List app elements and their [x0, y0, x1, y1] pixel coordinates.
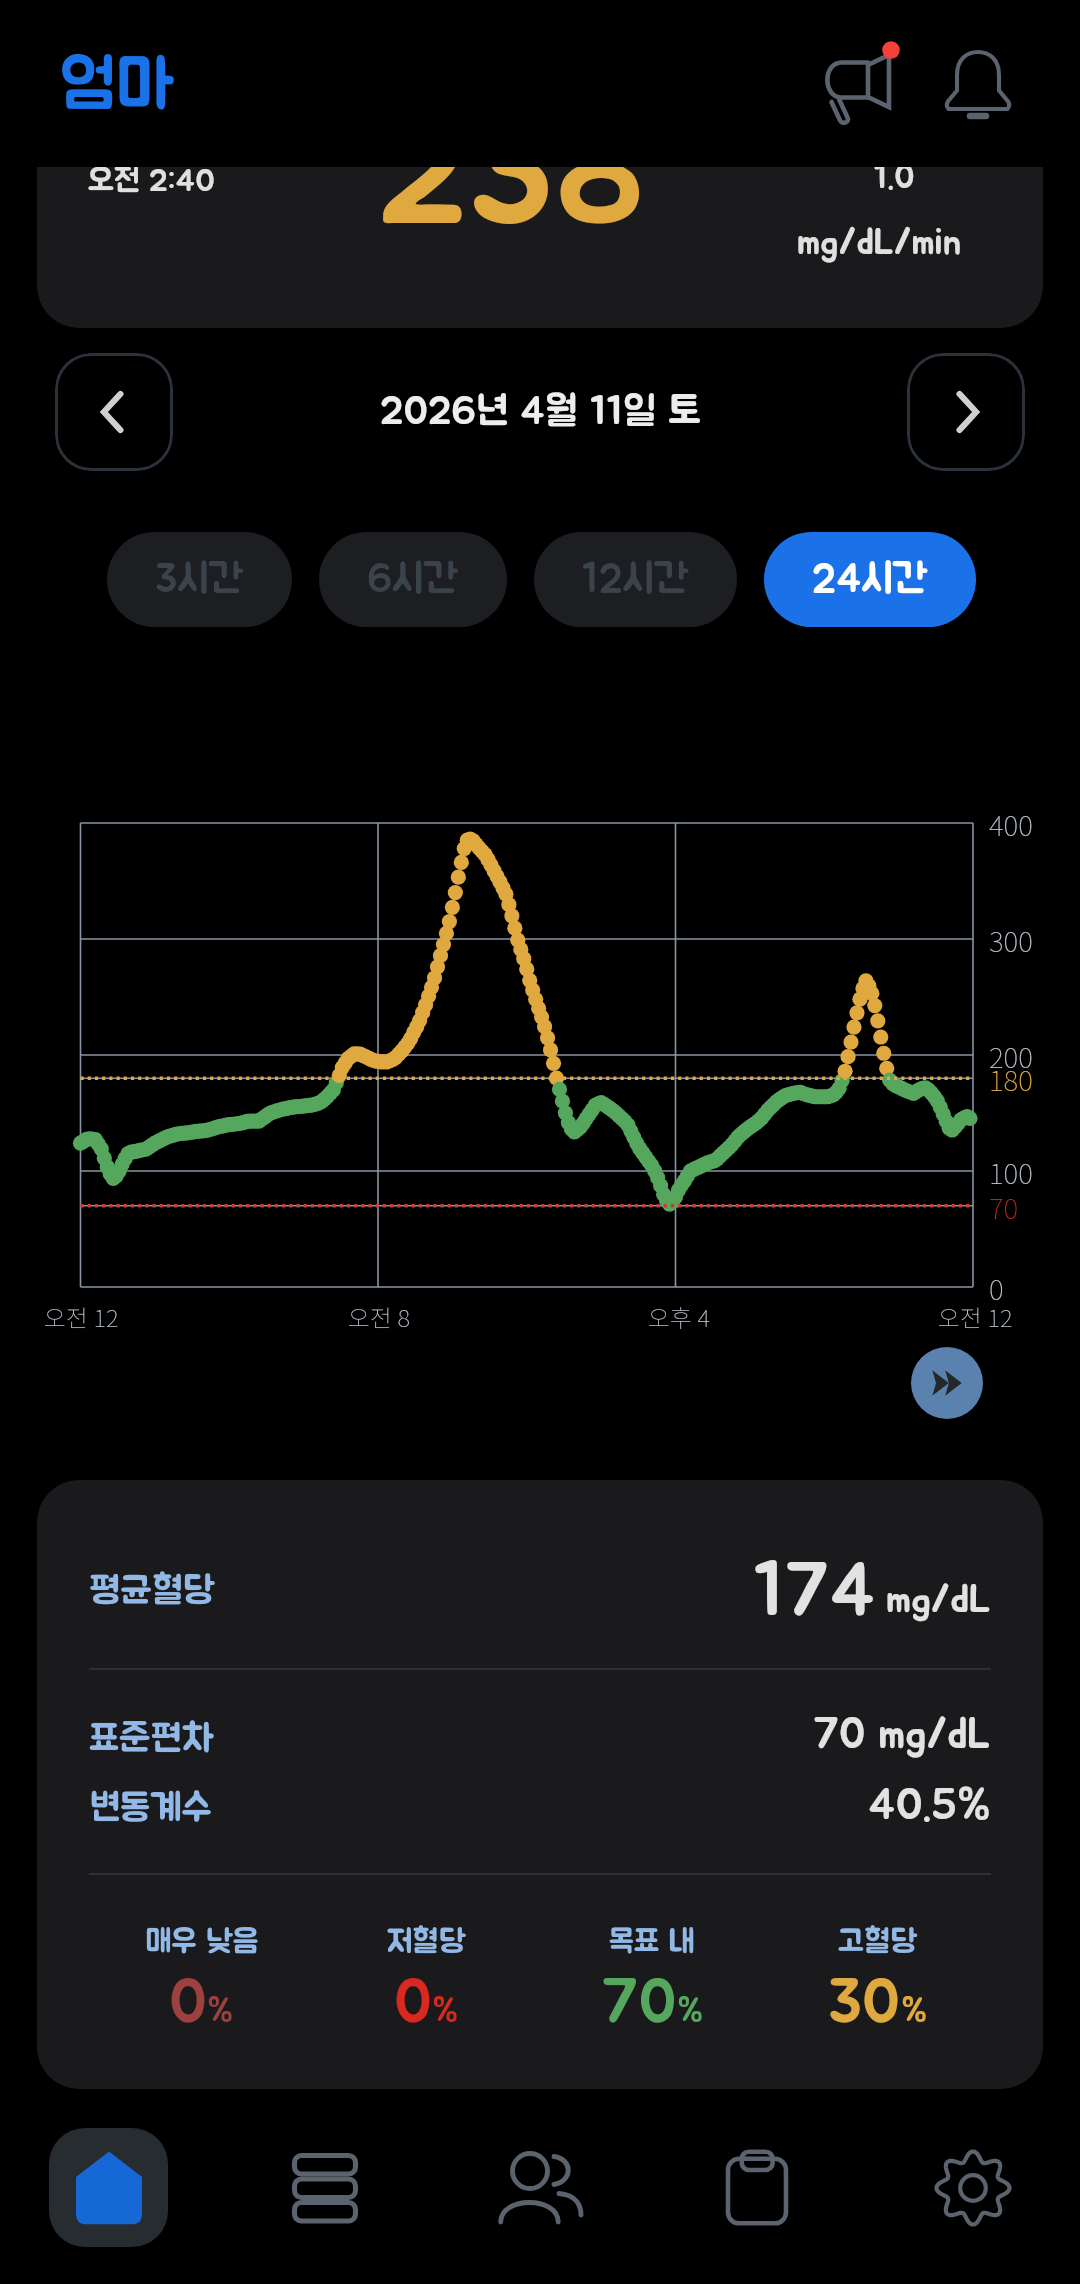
staticText: 오전 12	[938, 1299, 1013, 1334]
staticText: 300	[989, 920, 1033, 961]
staticText: 저혈당	[387, 1926, 466, 1958]
button[interactable]: 설정	[913, 2128, 1032, 2247]
button[interactable]: 다음 날	[907, 353, 1025, 471]
staticText: 변동계수	[89, 1790, 212, 1828]
button[interactable]: 기록	[265, 2128, 384, 2247]
staticText: 70 mg/dL	[813, 1714, 991, 1757]
button[interactable]: 3시간	[107, 532, 292, 627]
staticText: 12시간	[582, 559, 689, 600]
staticText: 목표 내	[609, 1926, 695, 1958]
button[interactable]: 24시간	[764, 532, 976, 627]
staticText: 180	[989, 1059, 1033, 1100]
button[interactable]: 알림	[928, 35, 1028, 135]
staticText: 매우 낮음	[145, 1926, 258, 1958]
button[interactable]: 공지사항	[810, 33, 910, 133]
staticText: %	[901, 1994, 928, 2028]
staticText: 100	[989, 1152, 1033, 1193]
staticText: 평균혈당	[89, 1573, 215, 1611]
staticText: 40.5%	[868, 1784, 991, 1828]
staticText: 고혈당	[838, 1926, 918, 1958]
button[interactable]: 다음으로 이동	[911, 1347, 983, 1419]
staticText: 6시간	[367, 559, 459, 600]
staticText: 200	[989, 1036, 1033, 1077]
staticText: 238	[376, 98, 646, 255]
staticText: 0	[169, 1972, 207, 2034]
staticText: 174	[754, 1556, 876, 1630]
staticText: 400	[989, 804, 1033, 845]
button[interactable]: 이전 날	[55, 353, 173, 471]
button[interactable]	[37, 167, 1043, 328]
staticText: 엄마	[60, 53, 174, 121]
staticText: %	[677, 1994, 704, 2028]
button[interactable]: 12시간	[534, 532, 737, 627]
staticText: 70	[601, 1972, 677, 2034]
staticText: 24시간	[812, 559, 928, 600]
staticText: 2026년 4월 11일 토	[380, 392, 701, 432]
staticText: 3시간	[155, 559, 244, 600]
staticText: 오전 2:40	[88, 165, 215, 197]
staticText: %	[207, 1994, 234, 2028]
staticText: %	[432, 1994, 459, 2028]
staticText: 30	[828, 1972, 901, 2034]
staticText: 오전 12	[44, 1299, 119, 1334]
staticText: 0	[394, 1972, 432, 2034]
button[interactable]: 홈	[49, 2128, 168, 2247]
button[interactable]: 보고서	[697, 2128, 816, 2247]
staticText: 표준편차	[89, 1721, 214, 1759]
staticText: mg/dL/min	[797, 224, 962, 261]
staticText: mg/dL	[886, 1580, 991, 1620]
staticText: 1.0	[874, 162, 915, 195]
staticText: 70	[989, 1187, 1019, 1228]
staticText: 오후 4	[648, 1299, 710, 1334]
staticText: 오전 8	[348, 1299, 410, 1334]
button[interactable]: 6시간	[319, 532, 507, 627]
button[interactable]: 팔로워	[481, 2128, 600, 2247]
staticText: 0	[989, 1268, 1004, 1309]
